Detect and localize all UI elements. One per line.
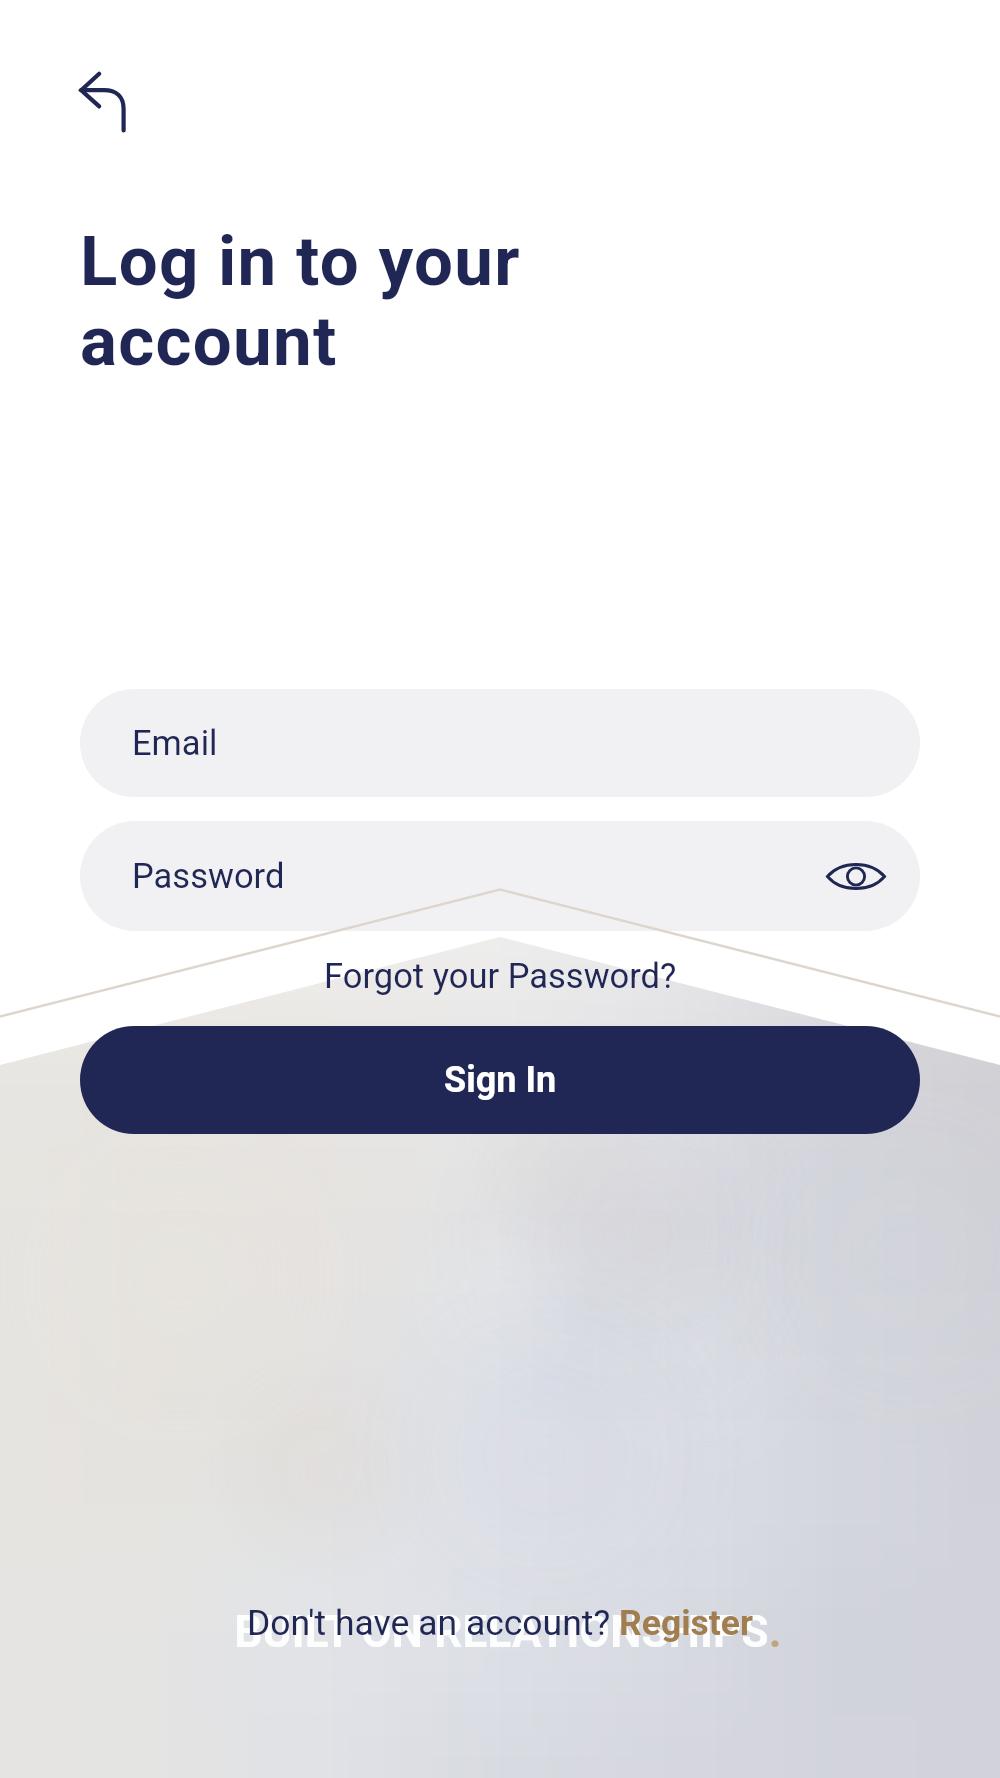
- staticText: Don't have an account?: [247, 1602, 619, 1644]
- staticText: Email: [132, 723, 218, 763]
- button[interactable]: Email: [80, 689, 920, 797]
- staticText: Register: [619, 1602, 754, 1644]
- staticText: BUILT ON RELATIONSHIPS.: [8, 1606, 1000, 1658]
- staticText: Sign In: [444, 1059, 557, 1101]
- staticText: Forgot your Password?: [324, 956, 677, 996]
- staticText: Log in to your account: [80, 221, 521, 382]
- button[interactable]: Back: [62, 58, 142, 138]
- button[interactable]: Register: [619, 1602, 754, 1644]
- button[interactable]: Sign In: [80, 1026, 920, 1134]
- button[interactable]: Forgot your Password?: [324, 956, 677, 996]
- button[interactable]: Password: [80, 821, 920, 931]
- button[interactable]: Show password: [820, 840, 892, 912]
- staticText: Password: [132, 856, 285, 896]
